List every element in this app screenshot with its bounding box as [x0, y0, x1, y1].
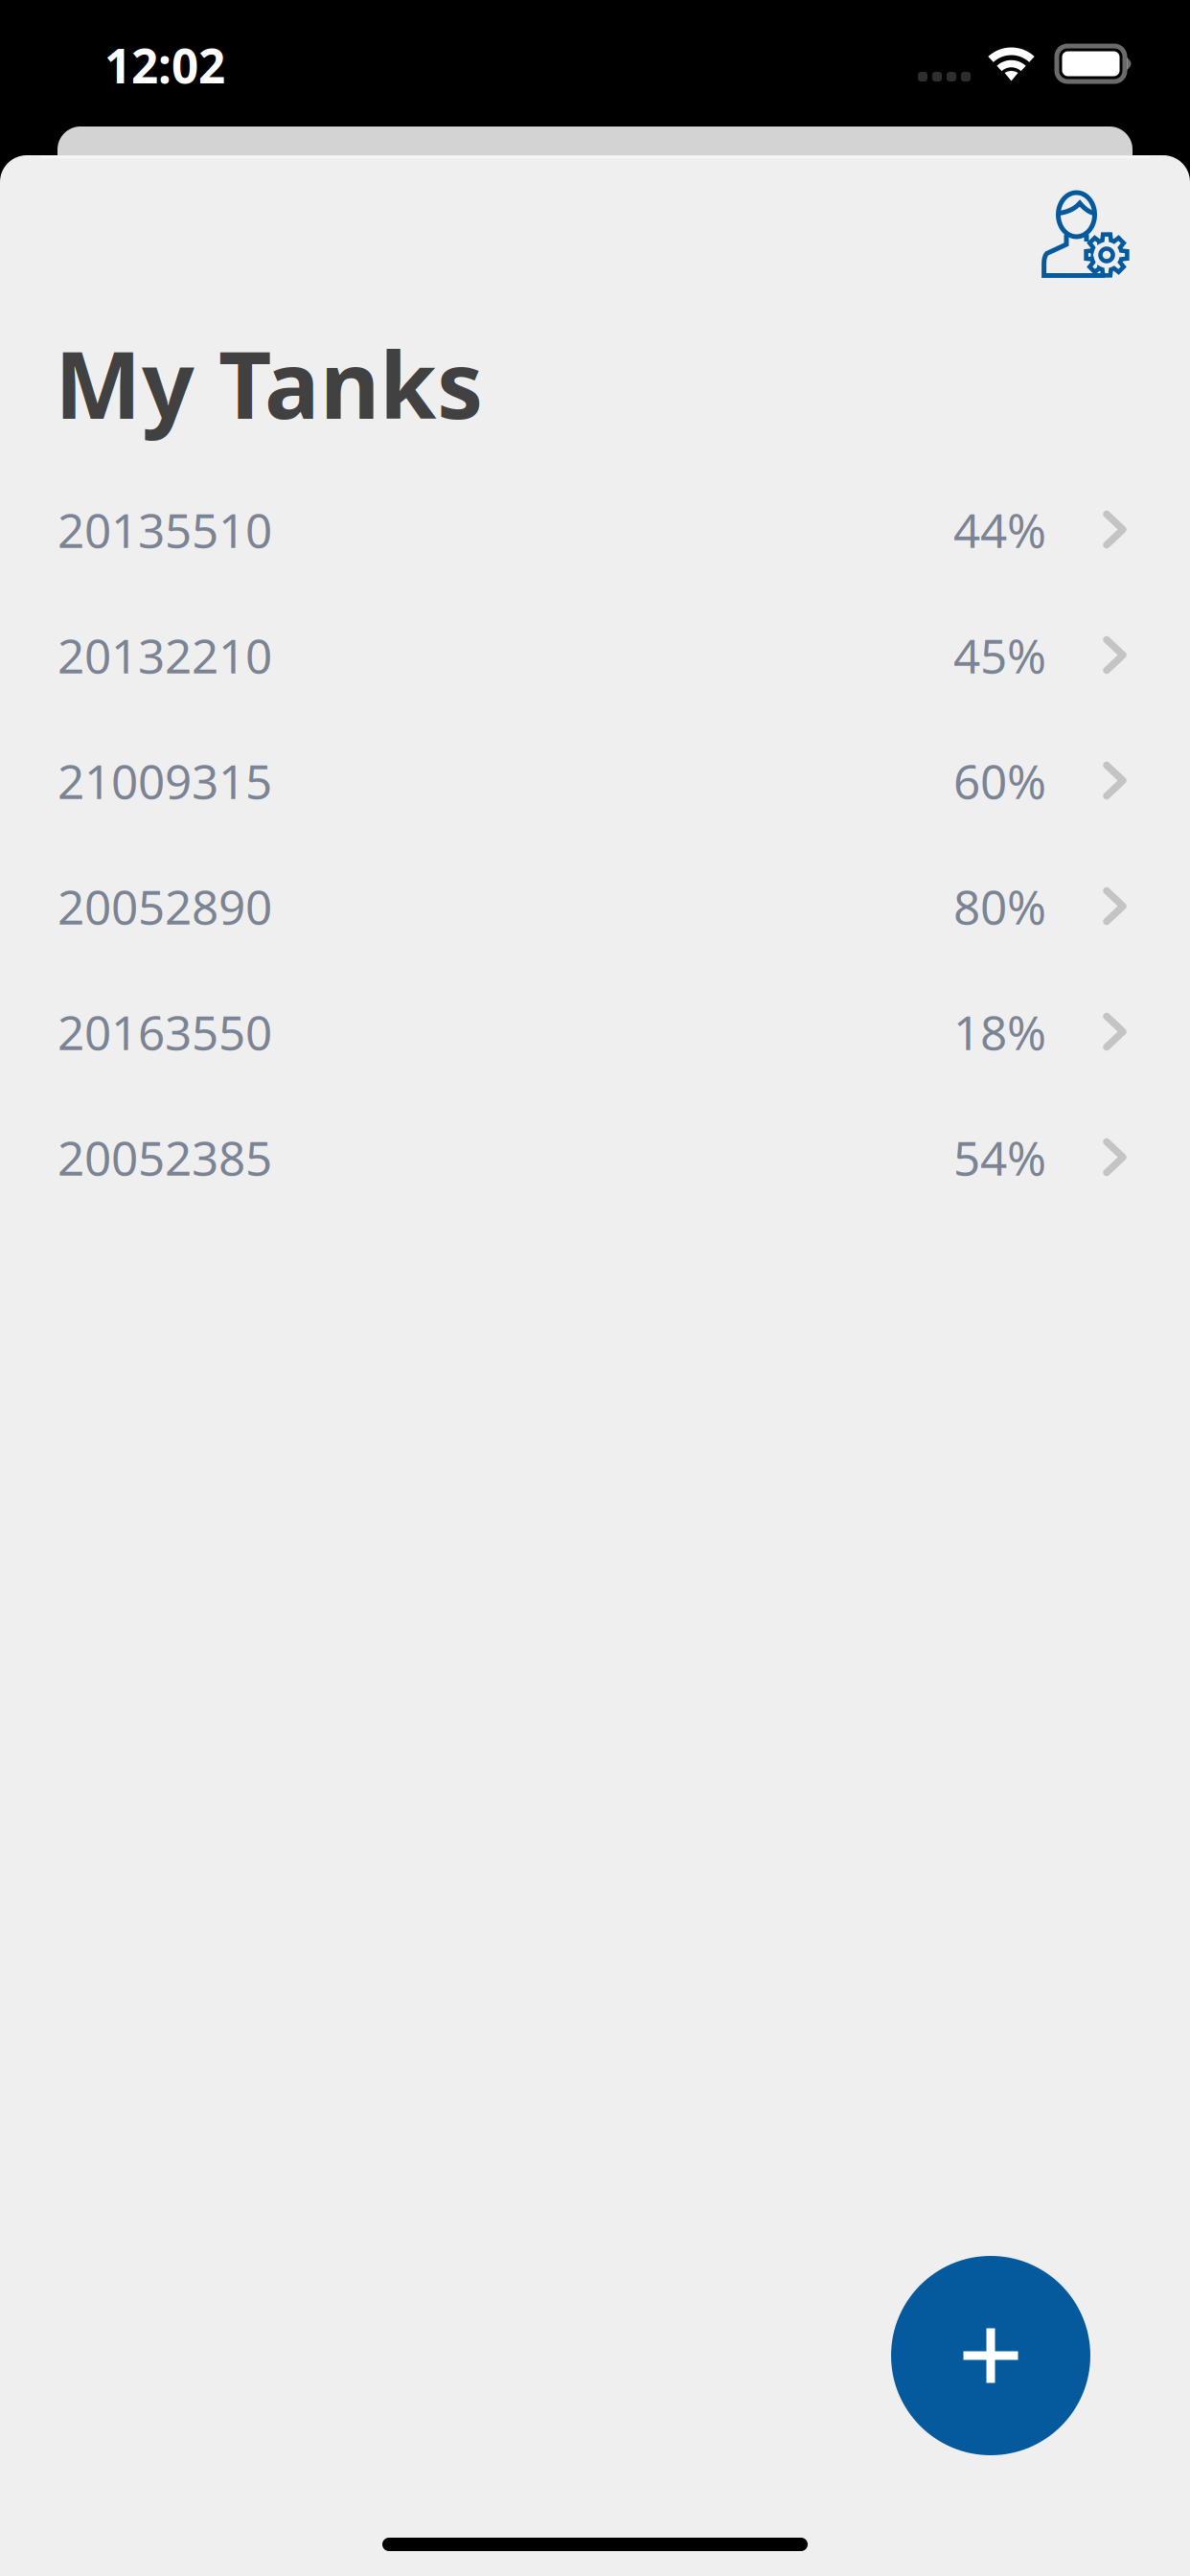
- staticText: 54%: [953, 1126, 1046, 1189]
- button[interactable]: 20132210: [0, 592, 1190, 718]
- button[interactable]: 20135510: [0, 467, 1190, 592]
- staticText: 20052890: [57, 875, 272, 937]
- staticText: 20135510: [57, 498, 272, 561]
- staticText: 80%: [953, 875, 1046, 937]
- staticText: 45%: [953, 624, 1046, 686]
- staticText: My Tanks: [55, 322, 483, 444]
- staticText: 44%: [953, 498, 1046, 561]
- staticText: 12:02: [104, 34, 225, 96]
- staticText: 20052385: [57, 1126, 272, 1189]
- button[interactable]: 20052385: [0, 1094, 1190, 1220]
- button[interactable]: 20052890: [0, 843, 1190, 969]
- staticText: 20163550: [57, 1000, 272, 1063]
- staticText: 60%: [953, 749, 1046, 812]
- button[interactable]: 21009315: [0, 718, 1190, 843]
- staticText: 20132210: [57, 624, 272, 686]
- button[interactable]: Account settings: [1041, 191, 1131, 279]
- button[interactable]: Add tank: [891, 2256, 1090, 2455]
- button[interactable]: 20163550: [0, 969, 1190, 1094]
- staticText: 21009315: [57, 749, 272, 812]
- staticText: 18%: [953, 1000, 1046, 1063]
